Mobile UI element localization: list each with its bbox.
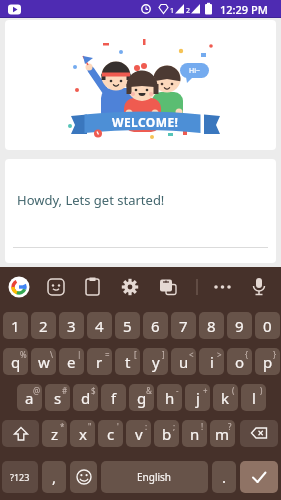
staticText: = (105, 349, 110, 359)
button[interactable]: t (115, 348, 140, 375)
button[interactable] (240, 461, 278, 493)
button[interactable]: j (185, 384, 210, 411)
staticText: 6 (151, 316, 160, 336)
button[interactable]: h (157, 384, 182, 411)
button[interactable]: i (199, 348, 224, 375)
staticText: q (11, 352, 21, 372)
button[interactable]: . (212, 461, 236, 493)
button[interactable] (240, 420, 278, 447)
button[interactable]: r (87, 348, 112, 375)
staticText: j (196, 388, 200, 408)
staticText: 2 (39, 316, 48, 336)
button[interactable]: s (45, 384, 70, 411)
button[interactable]: l (241, 384, 266, 411)
staticText: n (190, 424, 200, 444)
staticText: z (51, 424, 59, 444)
staticText: h (165, 388, 175, 408)
staticText: o (235, 352, 245, 372)
staticText: t (125, 352, 131, 372)
button[interactable]: n (182, 420, 207, 447)
staticText: b (162, 424, 172, 444)
button[interactable]: ?123 (2, 461, 38, 493)
staticText: < (189, 349, 194, 359)
staticText: + (203, 385, 208, 395)
button[interactable]: 3 (59, 312, 84, 339)
staticText: d (81, 388, 91, 408)
staticText: v (135, 424, 143, 444)
button[interactable]: 5 (115, 312, 140, 339)
button[interactable]: w (31, 348, 56, 375)
staticText: s (54, 388, 62, 408)
button[interactable]: 0 (255, 312, 280, 339)
staticText: English (137, 470, 172, 484)
staticText: : (145, 421, 148, 431)
button[interactable]: 6 (143, 312, 168, 339)
button[interactable]: 8 (199, 312, 224, 339)
button[interactable]: m (210, 420, 235, 447)
button[interactable]: v (126, 420, 151, 447)
button[interactable]: 1 (3, 312, 28, 339)
staticText: ] (162, 349, 165, 359)
button[interactable]: e (59, 348, 84, 375)
button[interactable]: 7 (171, 312, 196, 339)
button[interactable] (156, 274, 182, 300)
button[interactable] (43, 274, 69, 300)
button[interactable] (70, 461, 97, 493)
button[interactable] (2, 420, 39, 447)
staticText: 1 (11, 316, 20, 336)
staticText: | (77, 349, 82, 359)
staticText: y (152, 352, 160, 372)
staticText: > (217, 349, 222, 359)
staticText: 7 (179, 316, 188, 336)
staticText: } (273, 349, 277, 359)
staticText: g (137, 388, 147, 408)
staticText: 1 (170, 6, 175, 16)
staticText: 12:29 PM (220, 2, 268, 17)
button[interactable]: 9 (227, 312, 252, 339)
button[interactable]: g (129, 384, 154, 411)
button[interactable] (118, 274, 144, 300)
staticText: 3 (67, 316, 76, 336)
button[interactable]: Howdy, Lets get started! (5, 159, 276, 263)
staticText: ( (232, 385, 235, 395)
staticText: 5 (123, 316, 132, 336)
button[interactable]: f (101, 384, 126, 411)
staticText: 8 (207, 316, 216, 336)
button[interactable] (80, 274, 106, 300)
button[interactable]: c (98, 420, 123, 447)
button[interactable]: x (70, 420, 95, 447)
button[interactable]: a (17, 384, 42, 411)
button[interactable]: u (171, 348, 196, 375)
button[interactable]: k (213, 384, 238, 411)
staticText: # (62, 385, 68, 395)
button[interactable]: d (73, 384, 98, 411)
staticText: " (88, 421, 92, 431)
staticText: $ (91, 385, 96, 395)
button[interactable] (246, 274, 272, 300)
staticText: 0 (263, 316, 272, 336)
staticText: l (252, 388, 256, 408)
button[interactable]: o (227, 348, 252, 375)
staticText: m (215, 424, 230, 444)
button[interactable]: b (154, 420, 179, 447)
button[interactable]: y (143, 348, 168, 375)
button[interactable]: 2 (31, 312, 56, 339)
staticText: . (222, 467, 227, 487)
button[interactable] (6, 274, 32, 300)
staticText: u (179, 352, 189, 372)
staticText: ! (201, 421, 204, 431)
button[interactable]: q (3, 348, 28, 375)
staticText: % (20, 349, 27, 359)
staticText: k (221, 388, 230, 408)
staticText: * (60, 421, 65, 431)
button[interactable]: , (42, 461, 66, 493)
staticText: c (107, 424, 115, 444)
staticText: & (146, 385, 152, 395)
button[interactable]: p (255, 348, 280, 375)
button[interactable] (210, 274, 236, 300)
button[interactable]: z (42, 420, 67, 447)
staticText: \ (50, 349, 53, 359)
button[interactable]: English (101, 461, 208, 493)
button[interactable]: 4 (87, 312, 112, 339)
